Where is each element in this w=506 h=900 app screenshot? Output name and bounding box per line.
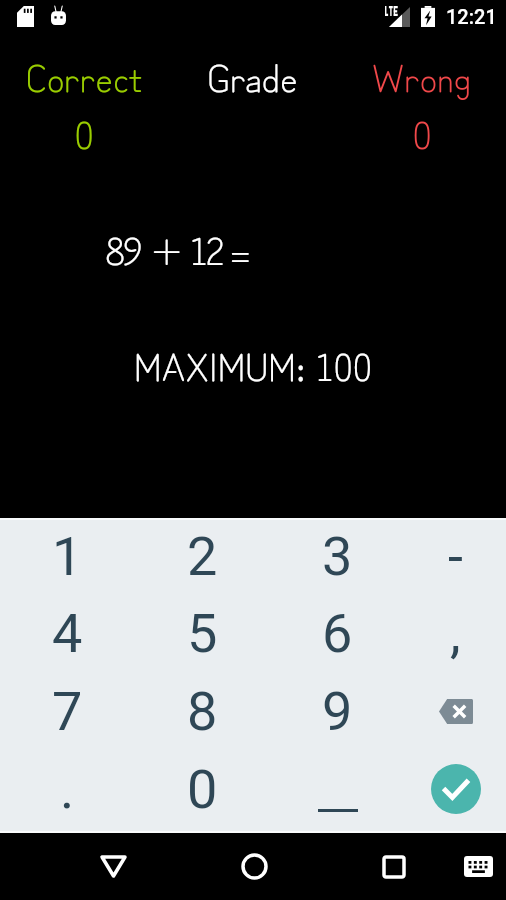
button[interactable]: - [405,518,506,595]
button[interactable]: 9 [270,672,405,750]
staticText: 0 [187,758,218,821]
staticText: , [450,602,461,665]
button[interactable]: 5 [135,595,270,672]
staticText: 89 + 12 = [105,221,249,276]
staticText: 5 [187,602,218,665]
button[interactable]: 7 [0,672,135,750]
staticText: 0 [412,105,432,160]
button[interactable]: . [0,750,135,828]
button[interactable]: 0 [135,750,270,828]
button[interactable]: , [405,595,506,672]
staticText: 2 [187,525,218,588]
staticText: Wrong [372,48,471,103]
staticText: 1 [52,525,83,588]
button[interactable]: Enter [431,764,481,814]
staticText: 7 [52,680,83,743]
button[interactable]: Recent apps [367,833,421,900]
button[interactable]: 4 [0,595,135,672]
button[interactable]: 2 [135,518,270,595]
button[interactable]: 8 [135,672,270,750]
staticText: 8 [187,680,218,743]
button[interactable] [270,750,405,828]
staticText: 9 [322,680,353,743]
staticText: 4 [52,602,83,665]
staticText: . [60,758,75,821]
button[interactable]: Home [227,833,281,900]
staticText: 6 [322,602,353,665]
button[interactable]: 3 [270,518,405,595]
button[interactable]: 1 [0,518,135,595]
staticText: MAXIMUM: 100 [134,337,372,392]
button[interactable]: Switch keyboard [451,833,505,900]
button[interactable]: Enter [405,750,506,828]
button[interactable]: Back [86,833,140,900]
staticText: 3 [322,525,353,588]
button[interactable]: Backspace [405,672,506,750]
button[interactable]: 6 [270,595,405,672]
staticText: Correct [25,48,143,103]
staticText: - [448,525,463,588]
staticText: 0 [74,105,94,160]
staticText: Grade [207,48,298,103]
other: Backspace [431,694,481,728]
staticText: 12:21 [446,5,497,28]
